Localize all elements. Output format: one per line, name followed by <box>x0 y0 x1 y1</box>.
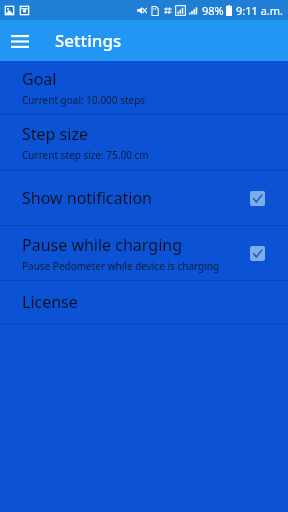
staticText: Current goal: 10,000 steps <box>22 93 146 107</box>
staticText: 9:11 a.m. <box>236 3 284 18</box>
button[interactable]: Show notification checkbox <box>242 183 272 213</box>
staticText: Show notification <box>22 187 153 209</box>
button[interactable]: Step size <box>0 115 288 170</box>
button[interactable]: Pause while charging <box>0 226 288 280</box>
staticText: License <box>22 291 78 313</box>
staticText: Pause Pedometer while device is charging <box>22 259 220 273</box>
button[interactable]: License <box>0 281 288 323</box>
button[interactable]: Pause while charging checkbox <box>242 238 272 268</box>
button[interactable]: Open navigation menu <box>0 21 40 61</box>
staticText: 98% <box>202 3 224 18</box>
staticText: Current step size: 75.00 cm <box>22 148 149 162</box>
staticText: Pause while charging <box>22 234 182 256</box>
staticText: Step size <box>22 123 88 145</box>
button[interactable]: Goal <box>0 61 288 114</box>
staticText: Settings <box>55 29 122 52</box>
staticText: Goal <box>22 68 57 90</box>
button[interactable]: Show notification <box>0 171 288 225</box>
